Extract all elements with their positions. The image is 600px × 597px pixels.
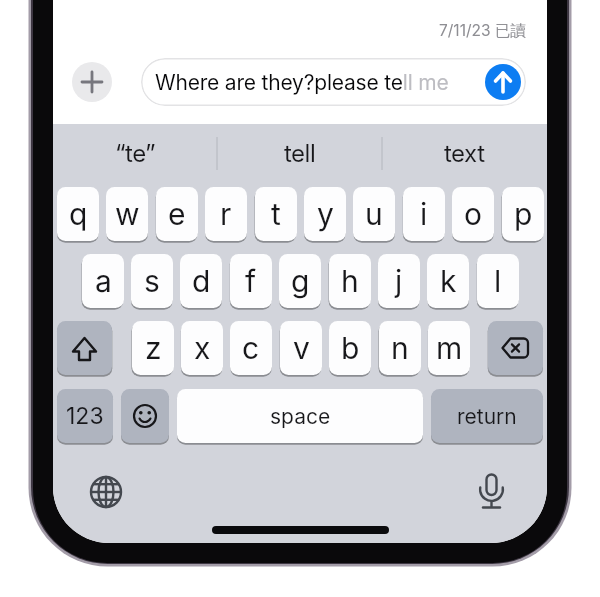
button[interactable]: h	[329, 254, 371, 308]
button[interactable]: u	[353, 187, 395, 241]
staticText: i	[420, 196, 428, 232]
button[interactable]: i	[403, 187, 445, 241]
button[interactable]: 123	[57, 389, 113, 443]
button[interactable]: l	[477, 254, 519, 308]
staticText: n	[391, 330, 409, 366]
staticText: space	[270, 404, 331, 429]
staticText: x	[194, 330, 211, 366]
staticText: b	[341, 330, 360, 366]
staticText: g	[291, 263, 310, 299]
button[interactable]: e	[156, 187, 198, 241]
button[interactable]: text	[384, 128, 545, 179]
button[interactable]: a	[82, 254, 124, 308]
button[interactable]	[57, 321, 112, 375]
button[interactable]: “te”	[55, 128, 215, 179]
staticText: o	[464, 196, 482, 232]
staticText: k	[440, 263, 457, 299]
staticText: “te”	[115, 139, 156, 168]
staticText: text	[444, 139, 485, 168]
button[interactable]: m	[428, 321, 470, 375]
staticText: Where are they?please tell me	[155, 70, 449, 95]
staticText: q	[69, 196, 88, 232]
staticText: f	[245, 263, 257, 299]
button[interactable]: k	[427, 254, 469, 308]
staticText: m	[436, 330, 463, 366]
button[interactable]: s	[131, 254, 173, 308]
button[interactable]: p	[502, 187, 544, 241]
button[interactable]: o	[452, 187, 494, 241]
button[interactable]: x	[181, 321, 223, 375]
button[interactable]: f	[230, 254, 272, 308]
staticText: c	[242, 330, 260, 366]
button[interactable]: tell	[219, 128, 380, 179]
staticText: e	[168, 196, 186, 232]
staticText: h	[341, 263, 359, 299]
button[interactable]	[488, 321, 543, 375]
button[interactable]: c	[230, 321, 272, 375]
staticText: j	[395, 263, 403, 299]
staticText: p	[514, 196, 533, 232]
staticText: tell	[284, 139, 316, 168]
button[interactable]: y	[304, 187, 346, 241]
staticText: s	[144, 263, 160, 299]
staticText: z	[145, 330, 162, 366]
staticText: r	[220, 196, 232, 232]
button[interactable]: r	[205, 187, 247, 241]
button[interactable]: q	[57, 187, 99, 241]
button[interactable]: return	[431, 389, 543, 443]
button[interactable]: n	[379, 321, 421, 375]
button[interactable]: t	[255, 187, 297, 241]
staticText: 7/11/23 已讀	[439, 21, 526, 41]
staticText: return	[457, 404, 517, 429]
button[interactable]: w	[106, 187, 148, 241]
button[interactable]	[485, 64, 521, 100]
button[interactable]	[121, 389, 169, 443]
staticText: l	[494, 263, 502, 299]
staticText: 123	[66, 402, 104, 430]
button[interactable]: z	[132, 321, 174, 375]
button[interactable]: g	[279, 254, 321, 308]
button[interactable]	[72, 62, 112, 102]
button[interactable]: j	[378, 254, 420, 308]
button[interactable]: d	[180, 254, 222, 308]
button[interactable]: Where are they?please tell me	[141, 58, 526, 106]
staticText: v	[293, 330, 310, 366]
button[interactable]: b	[329, 321, 371, 375]
staticText: d	[192, 263, 211, 299]
staticText: y	[317, 196, 334, 232]
staticText: a	[95, 263, 112, 299]
staticText: t	[271, 196, 281, 232]
staticText: u	[365, 196, 383, 232]
button[interactable]: space	[177, 389, 423, 443]
button[interactable]: v	[280, 321, 322, 375]
staticText: w	[115, 196, 140, 232]
